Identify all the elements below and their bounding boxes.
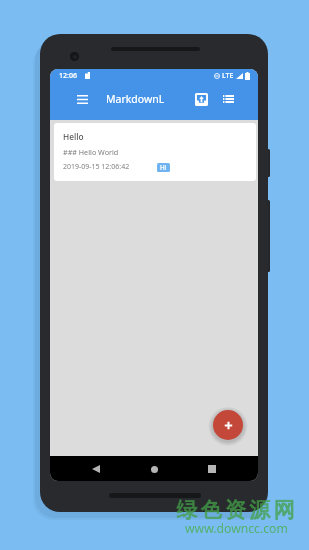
button[interactable]: Menu [71, 88, 93, 110]
staticText: 2019-09-15 12:06:42 [63, 162, 130, 172]
staticText: 绿色资源网 [175, 497, 296, 523]
staticText: 12:06 [59, 71, 77, 81]
button[interactable]: Home [143, 458, 165, 480]
button[interactable]: Add [213, 410, 243, 440]
button[interactable]: Hello [54, 123, 256, 181]
button[interactable]: Back [85, 458, 107, 480]
staticText: ### Hello World [63, 147, 119, 157]
button[interactable]: Recents [201, 458, 223, 480]
staticText: LTE [222, 71, 234, 81]
staticText: Hello [63, 131, 84, 142]
staticText: Hi [160, 163, 167, 172]
button[interactable]: List [217, 88, 239, 110]
staticText: MarkdownL [106, 92, 165, 106]
staticText: www.downcc.com [185, 520, 288, 537]
button[interactable]: Save [190, 88, 212, 110]
